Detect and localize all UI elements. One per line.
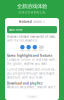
button[interactable]: See more [25, 95, 38, 98]
staticText: the globe, anytime you want [7, 62, 47, 65]
staticText: Compete online in real time with players… [7, 58, 57, 61]
staticText: Featured [19, 20, 32, 23]
staticText: Start now [9, 28, 22, 31]
staticText: See more [28, 96, 35, 97]
staticText: Collect daily rewards and unlock rare it… [7, 68, 57, 71]
staticText: you progress through every chapter of th… [7, 72, 57, 75]
staticText: adventure with your team [7, 76, 42, 79]
staticText: Works on every device, smooth and fast [7, 85, 57, 89]
staticText: 沉浸式互动冒险之旅 [18, 11, 45, 14]
staticText: with friends anywhere [7, 39, 38, 42]
staticText: Discover a brand new world of immersive … [7, 35, 57, 38]
staticText: Game highlights and features [7, 54, 52, 57]
staticText: 全新游戏体验 [17, 3, 47, 10]
button[interactable]: Start now [7, 26, 57, 33]
staticText: Download and play free [7, 82, 43, 85]
